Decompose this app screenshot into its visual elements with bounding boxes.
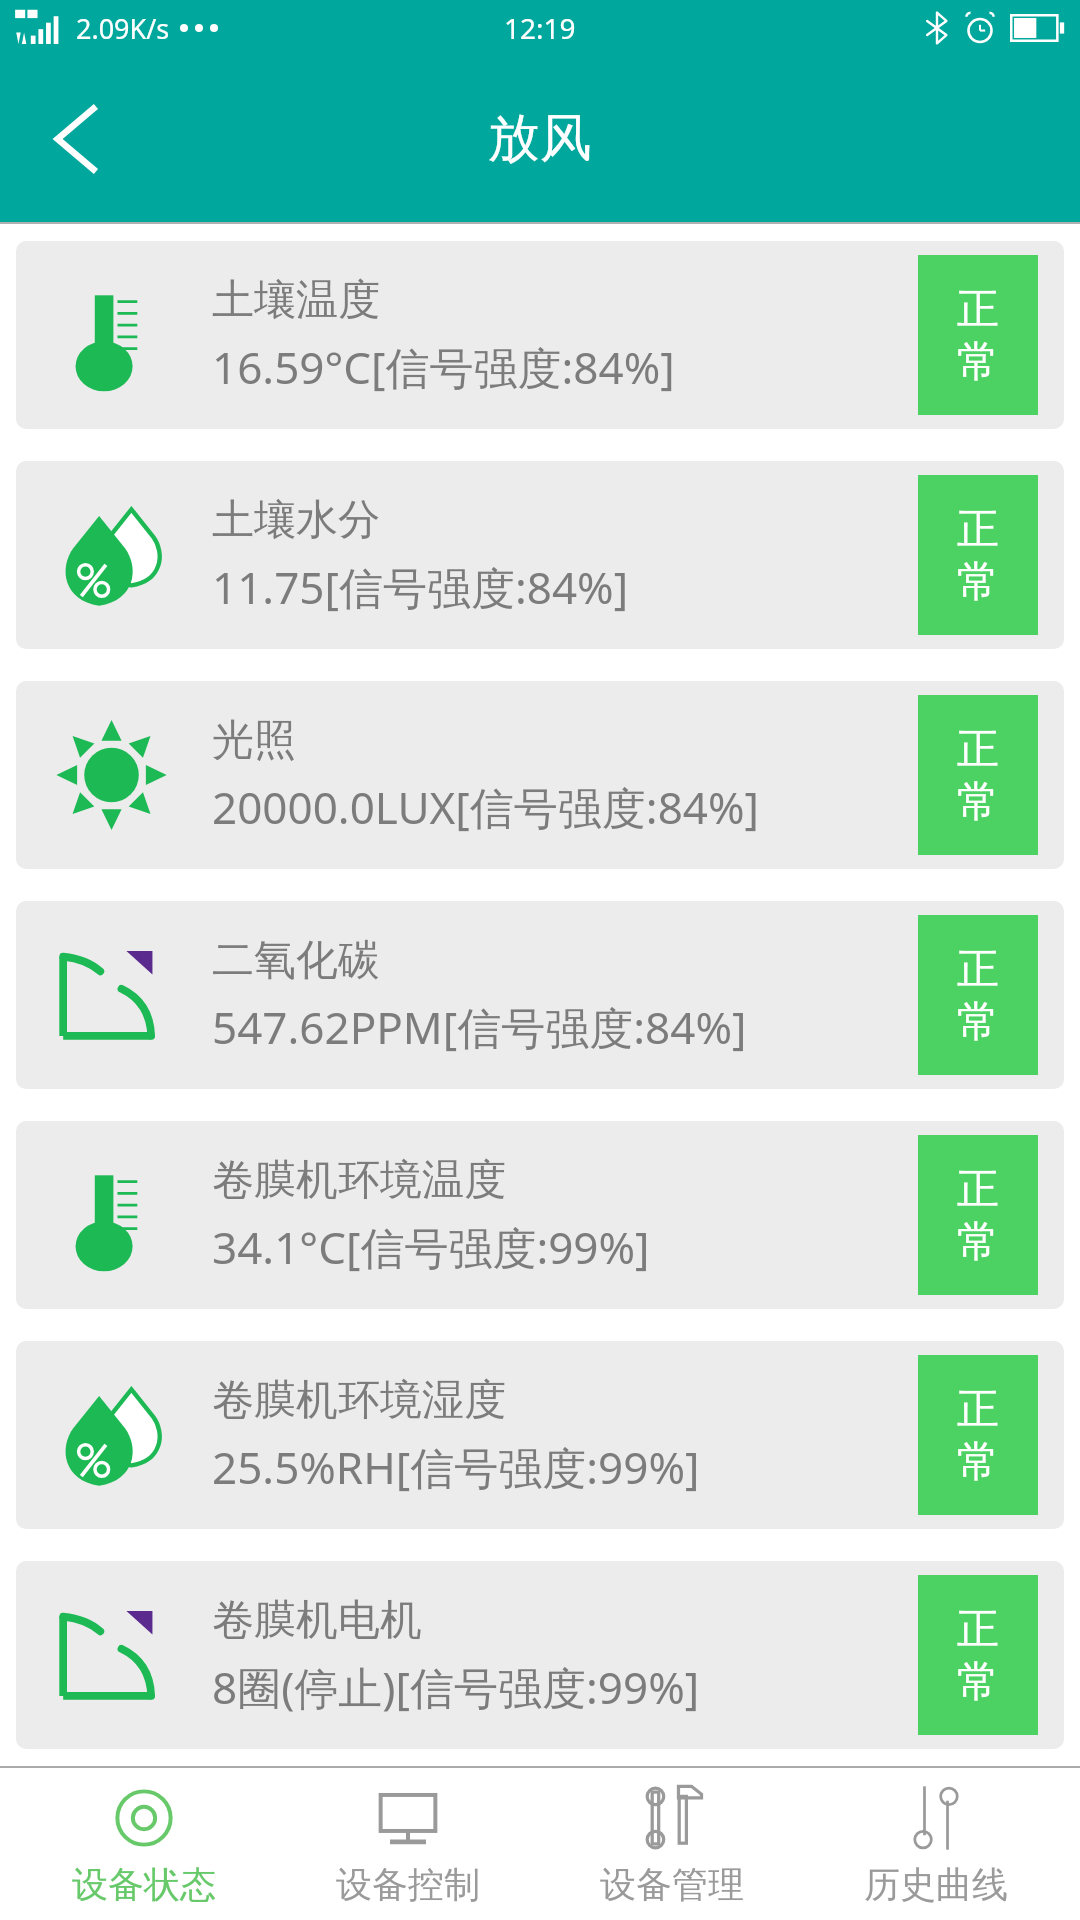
- button[interactable]: 正常: [918, 255, 1038, 415]
- staticText: 卷膜机环境温度: [212, 1154, 506, 1207]
- button[interactable]: Back: [36, 99, 116, 179]
- staticText: 二氧化碳: [212, 934, 380, 987]
- staticText: 16.59°C[信号强度:84%]: [212, 337, 675, 397]
- staticText: 正常: [951, 283, 1005, 388]
- button[interactable]: 卷膜机环境湿度: [16, 1341, 1064, 1529]
- staticText: 正常: [951, 503, 1005, 608]
- button[interactable]: 正常: [918, 695, 1038, 855]
- staticText: 8圈(停止)[信号强度:99%]: [212, 1657, 700, 1717]
- staticText: 设备状态: [72, 1862, 216, 1907]
- staticText: 光照: [212, 714, 296, 767]
- staticText: 正常: [951, 1163, 1005, 1268]
- staticText: 土壤水分: [212, 494, 380, 547]
- button[interactable]: 二氧化碳: [16, 901, 1064, 1089]
- button[interactable]: 卷膜机环境温度: [16, 1121, 1064, 1309]
- staticText: 土壤温度: [212, 274, 380, 327]
- staticText: 547.62PPM[信号强度:84%]: [212, 997, 747, 1057]
- staticText: 34.1°C[信号强度:99%]: [212, 1217, 650, 1277]
- button[interactable]: 正常: [918, 475, 1038, 635]
- button[interactable]: 设备管理: [552, 1768, 792, 1920]
- staticText: 正常: [951, 1383, 1005, 1488]
- button[interactable]: 正常: [918, 915, 1038, 1075]
- staticText: 卷膜机电机: [212, 1594, 422, 1647]
- staticText: 25.5%RH[信号强度:99%]: [212, 1437, 700, 1497]
- button[interactable]: 正常: [918, 1355, 1038, 1515]
- staticText: 正常: [951, 723, 1005, 828]
- button[interactable]: 土壤温度: [16, 241, 1064, 429]
- button[interactable]: 正常: [918, 1135, 1038, 1295]
- staticText: 卷膜机环境湿度: [212, 1374, 506, 1427]
- staticText: 正常: [951, 943, 1005, 1048]
- staticText: 放风: [488, 106, 592, 172]
- staticText: 设备管理: [600, 1862, 744, 1907]
- staticText: 正常: [951, 1603, 1005, 1708]
- button[interactable]: 设备状态: [24, 1768, 264, 1920]
- staticText: 12:19: [504, 9, 576, 47]
- staticText: 设备控制: [336, 1862, 480, 1907]
- button[interactable]: 土壤水分: [16, 461, 1064, 649]
- staticText: 历史曲线: [864, 1862, 1008, 1907]
- staticText: 2.09K/s: [76, 10, 170, 47]
- button[interactable]: 历史曲线: [816, 1768, 1056, 1920]
- button[interactable]: 正常: [918, 1575, 1038, 1735]
- staticText: 20000.0LUX[信号强度:84%]: [212, 777, 760, 837]
- button[interactable]: 卷膜机电机: [16, 1561, 1064, 1749]
- staticText: 11.75[信号强度:84%]: [212, 557, 629, 617]
- button[interactable]: 设备控制: [288, 1768, 528, 1920]
- button[interactable]: 光照: [16, 681, 1064, 869]
